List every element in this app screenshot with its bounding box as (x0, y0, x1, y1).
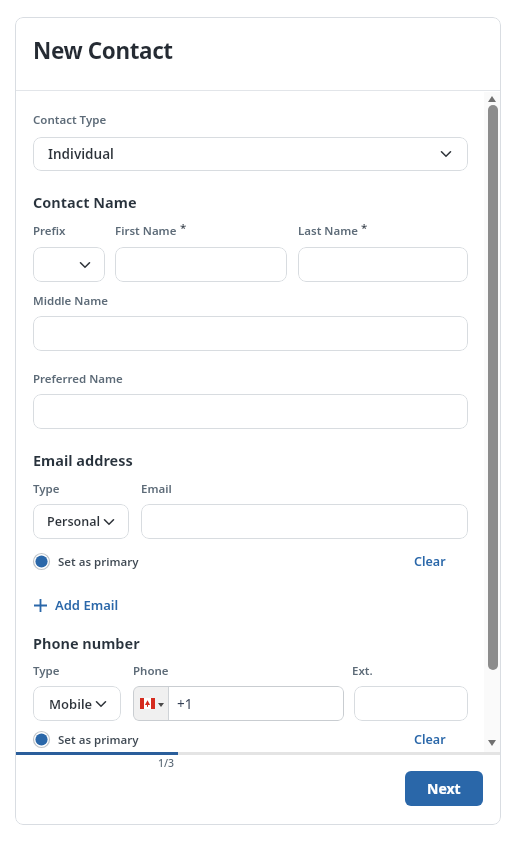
button[interactable] (33, 247, 105, 282)
button[interactable] (33, 731, 50, 748)
staticText: Personal (47, 513, 101, 530)
button[interactable] (33, 394, 468, 429)
button[interactable] (354, 686, 468, 721)
staticText: Mobile (49, 695, 93, 713)
staticText: Phone (133, 663, 169, 679)
staticText: Email (141, 481, 172, 497)
button[interactable]: Personal (33, 504, 129, 539)
staticText: Ext. (352, 663, 373, 679)
staticText: +1 (177, 695, 193, 713)
button[interactable]: Clear (414, 553, 446, 570)
button[interactable]: Add Email (33, 596, 119, 614)
staticText: New Contact (33, 35, 173, 66)
button[interactable] (141, 504, 468, 539)
button[interactable] (115, 247, 287, 282)
staticText: Last Name (298, 223, 358, 239)
staticText: Type (33, 663, 60, 679)
staticText: Prefix (33, 223, 66, 239)
staticText: Email address (33, 450, 133, 470)
staticText: Type (33, 481, 60, 497)
staticText: Contact Name (33, 192, 137, 212)
staticText: Contact Type (33, 112, 107, 128)
staticText: Clear (414, 731, 446, 748)
button[interactable]: Next (405, 771, 483, 806)
staticText: Set as primary (58, 732, 139, 748)
staticText: * (177, 220, 187, 236)
button[interactable]: Mobile (33, 686, 121, 721)
button[interactable] (298, 247, 468, 282)
staticText: Phone number (33, 633, 140, 653)
staticText: Middle Name (33, 293, 108, 309)
staticText: * (358, 220, 368, 236)
staticText: Set as primary (58, 554, 139, 570)
staticText: Add Email (55, 596, 119, 614)
button[interactable]: Individual (33, 137, 468, 171)
button[interactable] (33, 553, 50, 570)
button[interactable] (33, 316, 468, 351)
staticText: Preferred Name (33, 371, 123, 387)
button[interactable]: Clear (414, 731, 446, 748)
staticText: Clear (414, 553, 446, 570)
staticText: First Name (115, 223, 177, 239)
staticText: Next (427, 779, 461, 798)
staticText: Individual (48, 145, 114, 163)
button[interactable]: +1 (133, 686, 344, 721)
staticText: 1/3 (158, 756, 175, 770)
